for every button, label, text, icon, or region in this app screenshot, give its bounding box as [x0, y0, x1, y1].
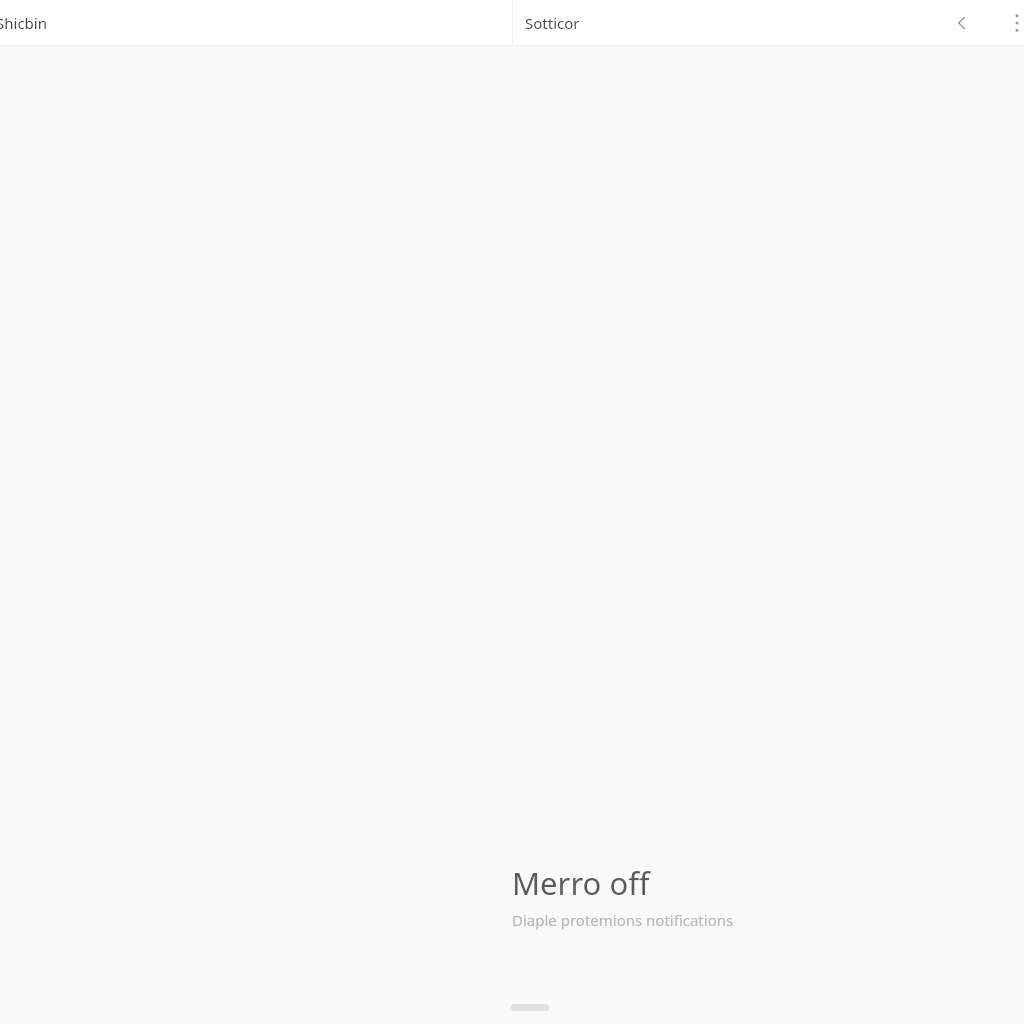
staticText: Diaple protemions notifications — [512, 910, 734, 930]
button[interactable]: Back — [938, 0, 986, 46]
button[interactable]: Sotticor — [513, 0, 693, 46]
button[interactable]: Shicbings — [0, 0, 60, 46]
button[interactable]: More options — [996, 0, 1024, 46]
staticText: Merro off — [512, 862, 650, 904]
button[interactable]: Merro off — [512, 862, 912, 930]
staticText: Shicbings — [0, 13, 56, 33]
staticText: Sotticor — [525, 13, 580, 33]
